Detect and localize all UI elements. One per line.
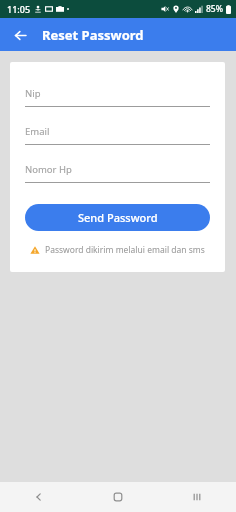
button[interactable]: Recents — [157, 482, 236, 512]
staticText: Reset Password — [42, 26, 144, 44]
staticText: Nip — [25, 87, 41, 100]
button[interactable]: Nip — [25, 87, 210, 107]
staticText: Nomor Hp — [25, 163, 72, 176]
staticText: Password dikirim melalui email dan sms — [45, 244, 205, 256]
button[interactable]: Back — [9, 24, 31, 46]
button[interactable]: Back — [0, 482, 78, 512]
staticText: 11:05 — [7, 3, 31, 15]
staticText: Email — [25, 125, 50, 138]
button[interactable]: Email — [25, 125, 210, 145]
staticText: Send Password — [78, 210, 158, 225]
button[interactable]: Send Password — [25, 204, 210, 231]
button[interactable]: Nomor Hp — [25, 163, 210, 183]
button[interactable]: Home — [78, 482, 157, 512]
staticText: 85% — [206, 3, 223, 15]
